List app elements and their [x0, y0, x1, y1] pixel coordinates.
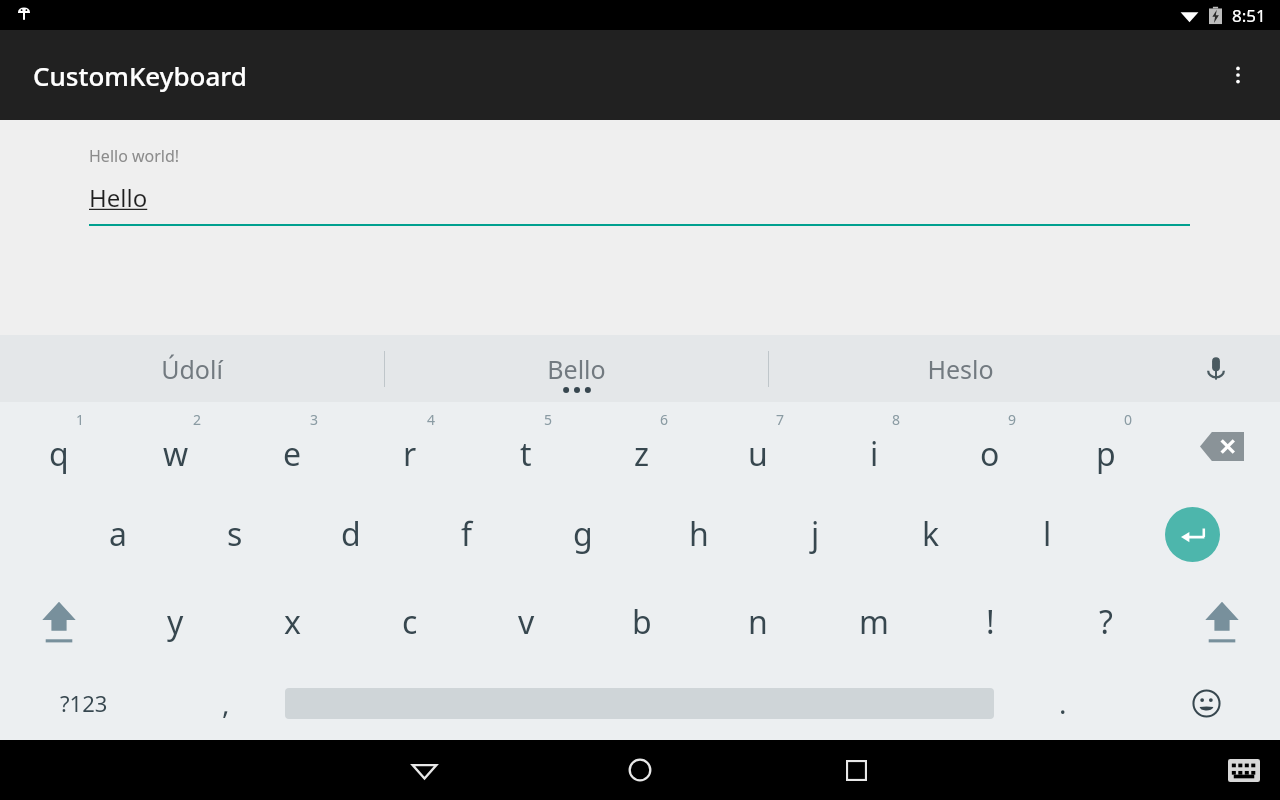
button[interactable]: .	[994, 666, 1132, 740]
staticText: 9	[1008, 410, 1017, 429]
staticText: 7	[776, 410, 785, 429]
button[interactable]: Hide keyboard	[396, 742, 452, 798]
staticText: 3	[310, 410, 319, 429]
staticText: 8	[892, 410, 901, 429]
button[interactable]: Voice input	[1152, 335, 1280, 402]
staticText: Hello world!	[89, 145, 180, 167]
staticText: d	[341, 512, 361, 556]
staticText: j	[811, 512, 820, 556]
button[interactable]: Údolí	[0, 335, 384, 402]
staticText: 4	[427, 410, 436, 429]
button[interactable]: Emoji	[1132, 666, 1280, 740]
staticText: i	[870, 432, 879, 476]
button[interactable]: Recent apps	[828, 742, 884, 798]
staticText: g	[573, 512, 593, 556]
staticText: b	[632, 600, 652, 644]
staticText: ,	[222, 684, 230, 722]
staticText: CustomKeyboard	[33, 58, 247, 93]
staticText: 5	[544, 410, 553, 429]
button[interactable]: h	[641, 490, 757, 578]
button[interactable]: 3	[234, 402, 351, 490]
staticText: w	[163, 432, 189, 476]
staticText: p	[1096, 432, 1116, 476]
button[interactable]: g	[525, 490, 641, 578]
button[interactable]: ,	[167, 666, 285, 740]
button[interactable]: v	[468, 578, 584, 666]
staticText: a	[109, 512, 127, 556]
staticText: h	[689, 512, 709, 556]
button[interactable]: Delete	[1164, 402, 1280, 490]
button[interactable]: More options	[1214, 51, 1262, 99]
staticText: ?	[1099, 600, 1113, 644]
staticText: l	[1043, 512, 1052, 556]
button[interactable]: n	[700, 578, 816, 666]
button[interactable]: 8	[816, 402, 932, 490]
button[interactable]: 6	[584, 402, 700, 490]
staticText: .	[1059, 684, 1067, 722]
staticText: Hello	[89, 181, 148, 214]
button[interactable]: Shift	[0, 578, 117, 666]
button[interactable]: 9	[932, 402, 1048, 490]
staticText: y	[167, 600, 184, 644]
staticText: 0	[1124, 410, 1133, 429]
button[interactable]: ?123	[0, 666, 167, 740]
button[interactable]: d	[293, 490, 409, 578]
button[interactable]: l	[989, 490, 1105, 578]
staticText: r	[403, 432, 417, 476]
staticText: e	[283, 432, 302, 476]
staticText: Údolí	[161, 352, 223, 386]
button[interactable]: Heslo	[769, 335, 1152, 402]
button[interactable]: j	[757, 490, 873, 578]
button[interactable]: 0	[1048, 402, 1164, 490]
button[interactable]: Space	[285, 666, 994, 740]
button[interactable]: Bello	[385, 335, 768, 402]
button[interactable]: 7	[700, 402, 816, 490]
button[interactable]: 1	[0, 402, 117, 490]
staticText: 6	[660, 410, 669, 429]
button[interactable]: 5	[468, 402, 584, 490]
staticText: s	[227, 512, 243, 556]
staticText: n	[748, 600, 768, 644]
button[interactable]: f	[409, 490, 525, 578]
staticText: o	[980, 432, 1000, 476]
button[interactable]: Home	[612, 742, 668, 798]
staticText: Heslo	[927, 352, 994, 386]
staticText: !	[986, 600, 995, 644]
staticText: 8:51	[1232, 4, 1266, 27]
button[interactable]: 2	[117, 402, 234, 490]
button[interactable]: k	[873, 490, 989, 578]
button[interactable]: ?	[1048, 578, 1164, 666]
button[interactable]: b	[584, 578, 700, 666]
staticText: 1	[76, 410, 85, 429]
staticText: x	[284, 600, 301, 644]
button[interactable]: c	[351, 578, 468, 666]
staticText: 2	[193, 410, 202, 429]
button[interactable]: a	[59, 490, 176, 578]
button[interactable]: x	[234, 578, 351, 666]
staticText: t	[520, 432, 532, 476]
staticText: c	[402, 600, 418, 644]
button[interactable]: s	[176, 490, 293, 578]
button[interactable]: m	[816, 578, 932, 666]
staticText: f	[461, 512, 473, 556]
staticText: v	[518, 600, 535, 644]
staticText: q	[49, 432, 69, 476]
staticText: ?123	[60, 688, 108, 718]
staticText: u	[748, 432, 768, 476]
button[interactable]: Shift	[1164, 578, 1280, 666]
staticText: m	[859, 600, 889, 644]
button[interactable]: Enter	[1105, 490, 1280, 578]
staticText: z	[634, 432, 650, 476]
button[interactable]: y	[117, 578, 234, 666]
button[interactable]: !	[932, 578, 1048, 666]
button[interactable]: 4	[351, 402, 468, 490]
staticText: k	[922, 512, 940, 556]
button[interactable]: Switch keyboard	[1220, 746, 1268, 794]
staticText: Bello	[547, 352, 606, 386]
